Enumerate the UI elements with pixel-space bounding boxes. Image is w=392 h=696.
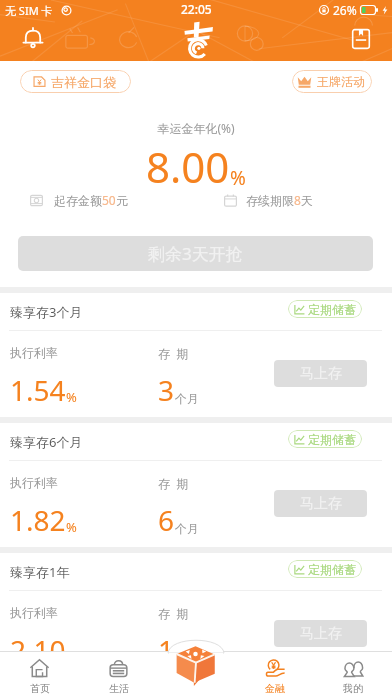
- staticText: 26%: [333, 2, 357, 18]
- staticText: 50: [102, 192, 116, 208]
- button[interactable]: 马上存: [274, 360, 367, 387]
- button[interactable]: Notifications: [18, 24, 48, 54]
- staticText: 个月: [175, 521, 199, 536]
- staticText: 首页: [30, 682, 50, 695]
- staticText: 存 期: [158, 345, 189, 361]
- button[interactable]: 王牌活动: [292, 70, 372, 93]
- staticText: 22:05: [181, 1, 212, 17]
- button[interactable]: 吉祥金口袋: [20, 70, 131, 93]
- button[interactable]: 定期储蓄: [288, 300, 362, 318]
- staticText: %: [66, 388, 77, 406]
- button[interactable]: Scan: [158, 652, 236, 696]
- button[interactable]: Documents: [348, 26, 374, 52]
- staticText: 我的: [343, 682, 363, 695]
- staticText: 3: [158, 371, 175, 409]
- button[interactable]: 我的: [314, 652, 392, 696]
- button[interactable]: Scan: [175, 645, 216, 686]
- staticText: 定期储蓄: [308, 562, 356, 577]
- staticText: 臻享存6个月: [10, 433, 83, 451]
- staticText: 1.82: [10, 501, 66, 539]
- staticText: 8.00: [146, 138, 230, 195]
- staticText: 执行利率: [10, 605, 58, 620]
- staticText: 臻享存1年: [10, 563, 70, 581]
- staticText: 金融: [265, 682, 285, 695]
- staticText: 马上存: [300, 365, 342, 383]
- staticText: 天: [301, 193, 313, 208]
- staticText: 马上存: [300, 495, 342, 513]
- staticText: %: [66, 648, 77, 666]
- staticText: 生活: [109, 682, 129, 695]
- staticText: 2.10: [10, 631, 66, 669]
- staticText: 马上存: [300, 625, 342, 643]
- staticText: 执行利率: [10, 475, 58, 490]
- staticText: 定期储蓄: [308, 432, 356, 447]
- staticText: 元: [116, 193, 128, 208]
- staticText: %: [230, 165, 246, 191]
- button[interactable]: 定期储蓄: [288, 430, 362, 448]
- staticText: %: [66, 518, 77, 536]
- staticText: 1: [158, 631, 175, 669]
- button[interactable]: 马上存: [274, 620, 367, 647]
- staticText: 个月: [175, 391, 199, 406]
- staticText: 幸运金年化(%): [0, 120, 392, 136]
- staticText: 起存金额: [54, 193, 102, 208]
- staticText: 存 期: [158, 605, 189, 621]
- staticText: 8: [294, 192, 301, 208]
- button[interactable]: 马上存: [274, 490, 367, 517]
- button[interactable]: 金融: [236, 652, 314, 696]
- staticText: 6: [158, 501, 175, 539]
- staticText: 存 期: [158, 475, 189, 491]
- button[interactable]: 首页: [0, 652, 79, 696]
- staticText: 1.54: [10, 371, 66, 409]
- staticText: 无 SIM 卡: [5, 3, 53, 18]
- staticText: 吉祥金口袋: [51, 74, 116, 90]
- button[interactable]: 定期储蓄: [288, 560, 362, 578]
- staticText: 王牌活动: [317, 74, 365, 89]
- staticText: 剩余3天开抢: [148, 242, 243, 265]
- staticText: 臻享存3个月: [10, 303, 83, 321]
- button[interactable]: 生活: [79, 652, 158, 696]
- staticText: 定期储蓄: [308, 302, 356, 317]
- staticText: 存续期限: [246, 193, 294, 208]
- staticText: 年: [175, 651, 187, 666]
- staticText: 执行利率: [10, 345, 58, 360]
- button[interactable]: 剩余3天开抢: [18, 236, 373, 271]
